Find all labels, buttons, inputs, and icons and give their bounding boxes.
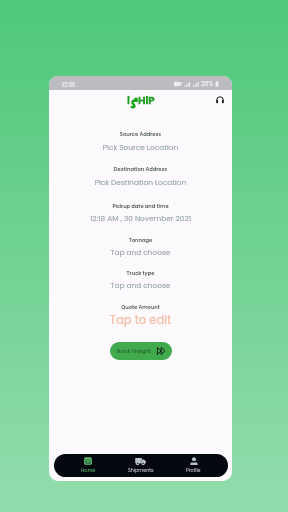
staticText: Pick Destination Location bbox=[49, 177, 232, 187]
button[interactable]: Pick Destination Location bbox=[49, 177, 232, 187]
button[interactable]: Tap to edit bbox=[49, 312, 232, 328]
staticText: Home bbox=[81, 467, 96, 474]
staticText: Truck type bbox=[49, 270, 232, 277]
staticText: Pick Source Location bbox=[49, 142, 232, 152]
staticText: Destination Address bbox=[49, 166, 232, 173]
staticText: Tonnage bbox=[49, 237, 232, 244]
button[interactable]: Home bbox=[62, 454, 114, 477]
staticText: Shipments bbox=[128, 467, 154, 474]
button[interactable]: Book Freight bbox=[110, 342, 172, 360]
staticText: Tap and choose bbox=[49, 247, 232, 257]
staticText: 12:18 AM , 30 November 2021 bbox=[49, 213, 232, 223]
staticText: Tap and choose bbox=[49, 280, 232, 290]
button[interactable]: Tap and choose bbox=[49, 247, 232, 257]
button[interactable]: Tap and choose bbox=[49, 280, 232, 290]
staticText: i bbox=[127, 93, 130, 108]
staticText: Source Address bbox=[49, 131, 232, 138]
staticText: Book Freight bbox=[117, 347, 152, 355]
button[interactable]: Shipments bbox=[114, 454, 167, 477]
button[interactable]: Pick Source Location bbox=[49, 142, 232, 152]
staticText: Pickup date and time bbox=[49, 203, 232, 210]
staticText: 26% bbox=[201, 79, 214, 88]
button[interactable]: 12:18 AM , 30 November 2021 bbox=[49, 213, 232, 223]
button[interactable]: Profile bbox=[167, 454, 220, 477]
staticText: Quote Amount bbox=[49, 304, 232, 311]
staticText: Profile bbox=[186, 467, 201, 474]
staticText: Tap to edit bbox=[49, 312, 232, 328]
button[interactable]: Support bbox=[215, 95, 225, 105]
staticText: HiP bbox=[138, 93, 155, 108]
staticText: 12:18 bbox=[62, 80, 75, 89]
